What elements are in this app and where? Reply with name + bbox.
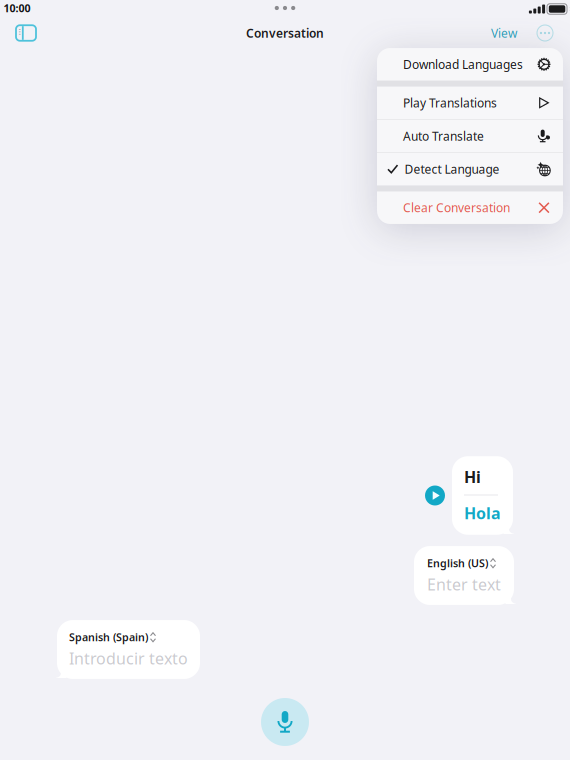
staticText: English (US) [427,556,488,570]
button[interactable]: Spanish (Spain) [69,630,156,644]
staticText: Auto Translate [403,128,484,144]
button[interactable]: View [484,19,524,47]
button[interactable]: Play Translations [377,86,563,119]
button[interactable]: Detect Language [377,153,563,185]
staticText: View [491,25,517,41]
button[interactable]: Auto Translate [377,120,563,152]
button[interactable]: Clear Conversation [377,191,563,224]
staticText: Detect Language [404,161,499,177]
button[interactable]: Show Sidebar [10,19,42,47]
button[interactable]: English (US) [427,556,496,570]
staticText: 10:00 [3,1,30,15]
button[interactable]: Record audio [261,698,309,746]
staticText: Clear Conversation [403,200,510,216]
staticText: Enter text [427,574,501,595]
staticText: Hi [464,466,481,487]
staticText: Introducir texto [69,648,188,669]
button[interactable]: More options [532,20,558,46]
staticText: Spanish (Spain) [69,630,148,644]
staticText: Download Languages [403,56,523,72]
staticText: Play Translations [403,95,497,111]
button[interactable]: Play translation [425,485,445,505]
staticText: Conversation [246,25,324,41]
staticText: Hola [464,502,501,524]
button[interactable]: Download Languages [377,48,563,80]
